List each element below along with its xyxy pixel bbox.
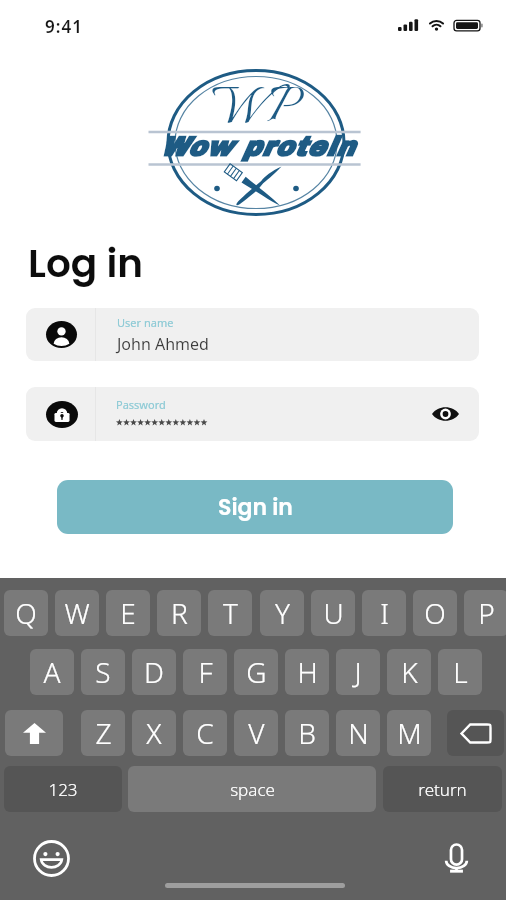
button[interactable]: U	[311, 590, 355, 636]
button[interactable]: Emoji	[31, 838, 71, 878]
button[interactable]: D	[132, 649, 176, 695]
staticText: WP	[186, 70, 326, 134]
staticText: K	[401, 653, 418, 691]
staticText: I	[380, 594, 389, 632]
staticText: Z	[95, 714, 112, 752]
staticText: G	[246, 653, 267, 691]
button[interactable]: I	[362, 590, 406, 636]
staticText: R	[171, 594, 188, 632]
button[interactable]: Voice input	[441, 841, 471, 875]
button[interactable]: Y	[260, 590, 304, 636]
staticText: N	[348, 714, 369, 752]
button[interactable]: N	[336, 710, 380, 756]
staticText: Wow protein	[136, 132, 378, 161]
staticText: M	[397, 714, 422, 752]
staticText: E	[120, 594, 136, 632]
button[interactable]: O	[413, 590, 457, 636]
staticText: 9:41	[45, 15, 83, 38]
button[interactable]: Shift	[5, 710, 63, 756]
staticText: space	[230, 778, 275, 801]
button[interactable]: T	[208, 590, 252, 636]
staticText: C	[196, 714, 214, 752]
button[interactable]: Sign in	[57, 480, 453, 534]
staticText: D	[144, 653, 164, 691]
button[interactable]: B	[285, 710, 329, 756]
button[interactable]: Password	[26, 387, 479, 441]
staticText: H	[297, 653, 318, 691]
staticText: W	[64, 594, 90, 632]
staticText: Sign in	[218, 492, 293, 523]
button[interactable]: F	[183, 649, 227, 695]
button[interactable]: H	[285, 649, 329, 695]
staticText: P	[478, 594, 495, 632]
button[interactable]: C	[183, 710, 227, 756]
staticText: Password	[116, 397, 166, 412]
button[interactable]: P	[464, 590, 506, 636]
staticText: V	[248, 714, 265, 752]
button[interactable]: 123	[4, 766, 122, 812]
staticText: John Ahmed	[117, 333, 209, 355]
staticText: 123	[48, 778, 78, 801]
button[interactable]: X	[132, 710, 176, 756]
button[interactable]: R	[157, 590, 201, 636]
button[interactable]: W	[55, 590, 99, 636]
button[interactable]: Q	[4, 590, 48, 636]
staticText: B	[298, 714, 316, 752]
button[interactable]: E	[106, 590, 150, 636]
staticText: F	[198, 653, 213, 691]
button[interactable]: space	[128, 766, 376, 812]
staticText: Log in	[28, 236, 144, 291]
staticText: Y	[275, 594, 290, 632]
button[interactable]: Z	[81, 710, 125, 756]
button[interactable]: Backspace	[447, 710, 504, 756]
button[interactable]: K	[387, 649, 431, 695]
button[interactable]: V	[234, 710, 278, 756]
button[interactable]: return	[383, 766, 502, 812]
staticText: Q	[15, 594, 37, 632]
button[interactable]: L	[438, 649, 482, 695]
staticText: L	[453, 653, 468, 691]
staticText: return	[418, 778, 467, 801]
staticText: User name	[117, 315, 174, 330]
staticText: X	[146, 714, 162, 752]
button[interactable]: S	[81, 649, 125, 695]
staticText: U	[323, 594, 344, 632]
staticText: A	[43, 653, 61, 691]
staticText: O	[424, 594, 446, 632]
button[interactable]: User name	[26, 308, 479, 361]
button[interactable]: Show password	[427, 396, 463, 432]
staticText: S	[95, 653, 111, 691]
staticText: J	[354, 653, 362, 691]
button[interactable]: M	[387, 710, 431, 756]
staticText: T	[223, 594, 238, 632]
button[interactable]: A	[30, 649, 74, 695]
button[interactable]: G	[234, 649, 278, 695]
button[interactable]: J	[336, 649, 380, 695]
